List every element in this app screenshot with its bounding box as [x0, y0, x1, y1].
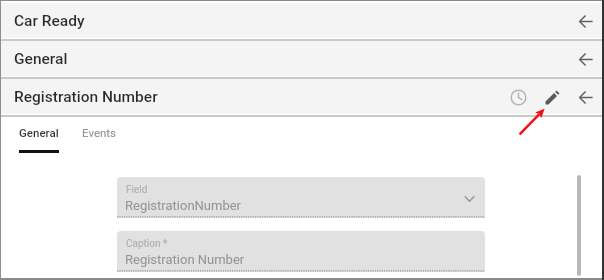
- button[interactable]: Edit: [538, 83, 566, 111]
- button[interactable]: Car Ready: [0, 3, 604, 41]
- staticText: Caption *: [126, 238, 168, 250]
- staticText: Field: [126, 184, 148, 196]
- button[interactable]: Back: [571, 6, 601, 36]
- staticText: Car Ready: [14, 12, 85, 30]
- button[interactable]: Caption *: [117, 231, 485, 272]
- button[interactable]: Back: [571, 82, 601, 112]
- staticText: Events: [82, 126, 117, 139]
- button[interactable]: General: [19, 126, 59, 139]
- button[interactable]: Back: [571, 44, 601, 74]
- staticText: General: [19, 126, 59, 139]
- button[interactable]: Field: [117, 177, 485, 218]
- button[interactable]: Registration Number: [0, 79, 604, 117]
- staticText: RegistrationNumber: [125, 198, 241, 213]
- button[interactable]: Events: [82, 126, 117, 139]
- staticText: Registration Number: [14, 88, 158, 106]
- button[interactable]: General: [0, 41, 604, 79]
- staticText: General: [14, 50, 68, 68]
- staticText: Registration Number: [125, 252, 245, 267]
- button[interactable]: History: [504, 83, 532, 111]
